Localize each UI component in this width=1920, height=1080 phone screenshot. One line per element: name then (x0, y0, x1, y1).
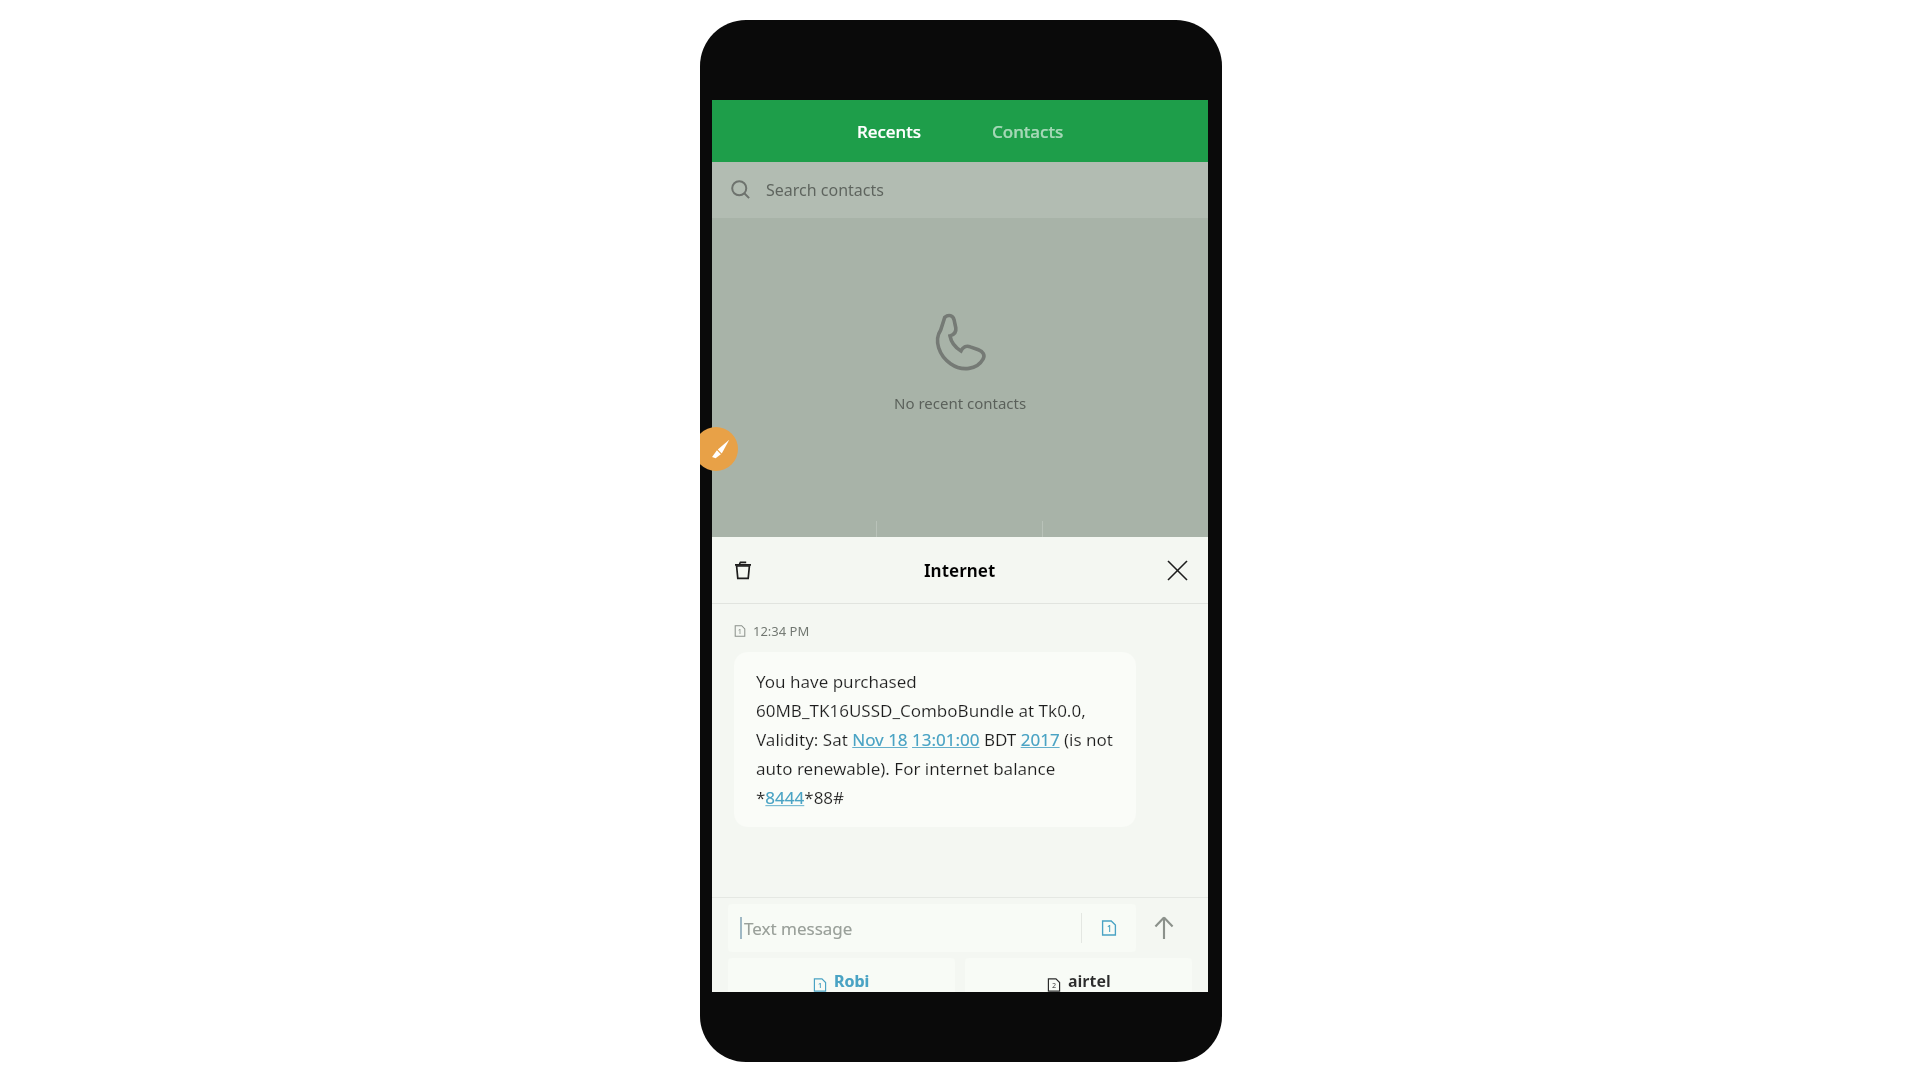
staticText: Recents (857, 120, 922, 143)
button[interactable]: You have purchased 60MB_TK16USSD_ComboBu… (734, 652, 1136, 827)
staticText: 12:34 PM (753, 622, 810, 640)
staticText: You have purchased 60MB_TK16USSD_ComboBu… (756, 670, 1114, 809)
button[interactable]: Close (1154, 547, 1200, 593)
button[interactable]: Contacts (966, 106, 1090, 157)
button[interactable]: 2 (965, 958, 1192, 992)
staticText: No recent contacts (894, 393, 1027, 413)
staticText: 1 (1107, 923, 1112, 934)
staticText: 1 (818, 980, 823, 990)
staticText: Search contacts (766, 179, 884, 201)
staticText: Robi (834, 970, 870, 992)
button[interactable]: Text message (728, 904, 1136, 952)
button[interactable]: Delete (720, 547, 766, 593)
button[interactable]: Select SIM (1082, 904, 1136, 952)
button[interactable]: Search contacts (712, 162, 1208, 218)
staticText: Internet (924, 559, 996, 582)
button[interactable]: 1 (728, 958, 955, 992)
button[interactable]: Send (1136, 898, 1192, 958)
staticText: airtel (1068, 970, 1111, 992)
staticText: 1 (738, 627, 742, 635)
staticText: Text message (744, 917, 853, 940)
staticText: Contacts (992, 120, 1064, 143)
button[interactable]: Recents (831, 106, 948, 157)
button[interactable]: Compose (700, 427, 738, 471)
staticText: 2 (1052, 980, 1057, 990)
